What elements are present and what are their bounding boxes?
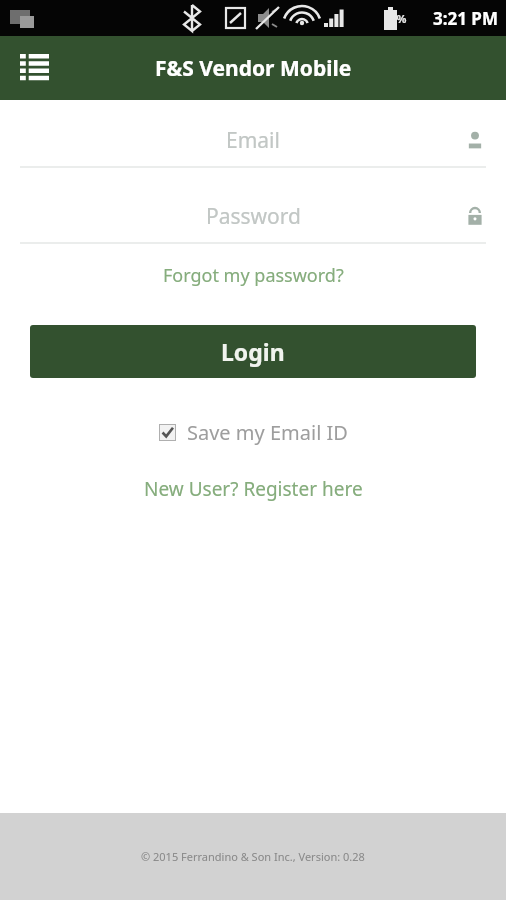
- button[interactable]: New User? Register here: [0, 469, 506, 509]
- staticText: 3:21 PM: [433, 7, 498, 30]
- other: Password: [464, 205, 486, 227]
- staticText: Password: [206, 202, 301, 231]
- staticText: 58%: [384, 11, 407, 26]
- staticText: Forgot my password?: [163, 263, 344, 288]
- button[interactable]: Email: [0, 114, 506, 168]
- button[interactable]: Menu: [14, 48, 54, 88]
- staticText: Save my Email ID: [187, 419, 348, 446]
- button[interactable]: Save my Email ID: [0, 414, 506, 451]
- staticText: © 2015 Ferrandino & Son Inc., Version: 0…: [141, 849, 365, 864]
- staticText: F&S Vendor Mobile: [155, 54, 352, 83]
- staticText: Email: [226, 126, 280, 155]
- button[interactable]: Login: [30, 325, 476, 378]
- other: Account: [464, 129, 486, 151]
- staticText: New User? Register here: [144, 476, 363, 502]
- staticText: Login: [221, 336, 285, 367]
- button[interactable]: Password: [0, 190, 506, 244]
- button[interactable]: Forgot my password?: [0, 256, 506, 295]
